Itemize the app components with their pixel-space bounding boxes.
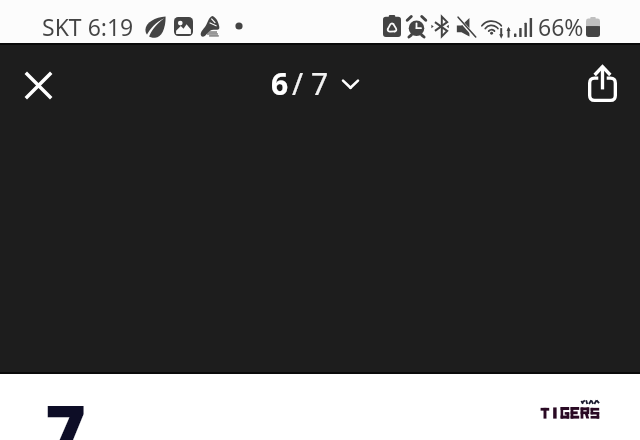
button[interactable]: Share [576,57,628,109]
button[interactable]: 6 [265,57,365,110]
staticText: 6 [271,63,289,104]
staticText: / 7 [292,63,329,104]
staticText: 66% [538,11,584,42]
button[interactable]: Close [12,59,64,111]
staticText: SKT 6:19 [42,11,134,42]
staticText: 7 [45,382,87,440]
